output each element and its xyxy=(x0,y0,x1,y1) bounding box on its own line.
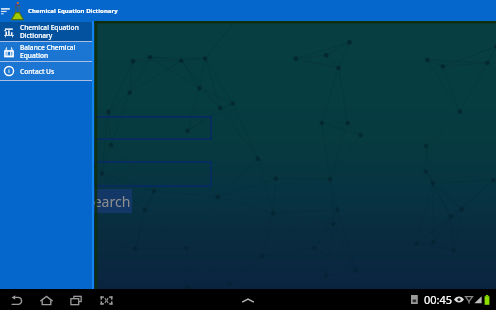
button[interactable] xyxy=(80,117,211,139)
staticText: 00:45 xyxy=(424,292,453,307)
button[interactable]: Screenshot xyxy=(97,291,115,309)
staticText: Chemical Equation Dictionary xyxy=(20,23,79,40)
button[interactable]: Recent apps xyxy=(67,291,85,309)
button[interactable]: Open navigation drawer xyxy=(0,0,11,21)
button[interactable]: Chemical Equation Dictionary xyxy=(0,22,94,41)
button[interactable]: Home xyxy=(37,291,55,309)
button[interactable]: Back xyxy=(7,291,25,309)
staticText: Contact Us xyxy=(20,67,55,76)
button[interactable]: Contact Us xyxy=(0,62,94,80)
button[interactable] xyxy=(80,162,211,186)
button[interactable]: Balance Chemical Equation xyxy=(0,42,94,61)
staticText: Chemical Equation Dictionary xyxy=(28,7,118,15)
staticText: Search xyxy=(86,192,131,211)
staticText: Balance Chemical Equation xyxy=(20,43,76,60)
button[interactable]: Search xyxy=(84,189,132,213)
button[interactable]: Expand xyxy=(240,292,256,308)
